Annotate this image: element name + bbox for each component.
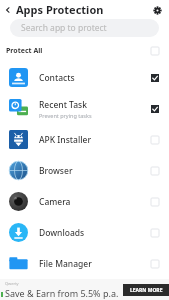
- staticText: LEARN MORE: [130, 287, 163, 294]
- button[interactable]: Unchecked: [149, 227, 161, 239]
- button[interactable]: Unchecked: [149, 134, 161, 146]
- button[interactable]: Unchecked: [149, 196, 161, 208]
- staticText: Qwerty: [5, 281, 19, 286]
- staticText: Apps Protection: [16, 2, 104, 17]
- staticText: Contacts: [39, 72, 75, 84]
- button[interactable]: Qwerty: [0, 279, 169, 300]
- button[interactable]: Unchecked: [149, 45, 161, 57]
- staticText: Recent Task: [39, 99, 87, 111]
- button[interactable]: Back: [1, 3, 15, 17]
- button[interactable]: Browser: [0, 155, 169, 186]
- button[interactable]: Recent Task: [0, 93, 169, 124]
- staticText: Prevent prying tasks: [39, 112, 92, 119]
- button[interactable]: Contacts: [0, 62, 169, 93]
- button[interactable]: LEARN MORE: [123, 284, 169, 296]
- staticText: Protect All: [6, 46, 43, 56]
- button[interactable]: Camera: [0, 186, 169, 217]
- staticText: File Manager: [39, 258, 92, 270]
- button[interactable]: Unchecked: [149, 165, 161, 177]
- button[interactable]: Checked: [149, 103, 161, 115]
- staticText: Camera: [39, 196, 71, 208]
- button[interactable]: Settings: [149, 2, 165, 18]
- button[interactable]: APK Installer: [0, 124, 169, 155]
- button[interactable]: Unchecked: [149, 258, 161, 270]
- button[interactable]: Protect All: [0, 44, 169, 58]
- staticText: APK Installer: [39, 134, 91, 146]
- button[interactable]: File Manager: [0, 248, 169, 279]
- staticText: Search app to protect: [21, 22, 107, 34]
- staticText: Browser: [39, 165, 73, 177]
- button[interactable]: Checked: [149, 72, 161, 84]
- staticText: Save & Earn from 5.5% p.a.: [5, 287, 119, 299]
- staticText: Downloads: [39, 227, 85, 239]
- button[interactable]: Search app to protect: [10, 19, 159, 37]
- button[interactable]: Downloads: [0, 217, 169, 248]
